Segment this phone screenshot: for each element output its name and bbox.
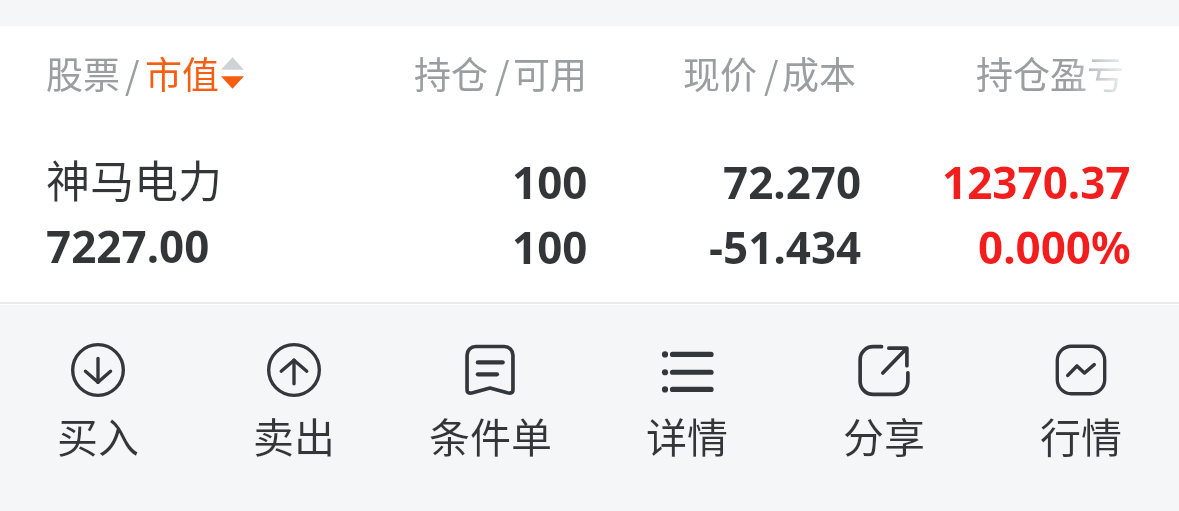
staticText: 100	[512, 217, 588, 277]
staticText: 持仓盈亏	[976, 46, 1124, 100]
button[interactable]: 持仓	[414, 46, 587, 100]
staticText: 0.000%	[978, 217, 1131, 277]
staticText: 成本	[782, 46, 856, 100]
button[interactable]: 买入	[0, 305, 196, 511]
staticText: 股票	[46, 46, 120, 100]
staticText: 现价	[683, 46, 757, 100]
staticText: /	[125, 46, 140, 100]
staticText: 卖出	[253, 405, 335, 464]
button[interactable]: 神马电力	[0, 121, 1179, 302]
staticText: 分享	[843, 405, 925, 464]
button[interactable]: 行情	[982, 305, 1179, 511]
staticText: 72.270	[723, 152, 862, 212]
button[interactable]: 卖出	[196, 305, 392, 511]
button[interactable]: 分享	[785, 305, 982, 511]
staticText: 12370.37	[942, 152, 1131, 212]
staticText: 条件单	[429, 405, 552, 464]
button[interactable]: 现价	[683, 46, 856, 100]
button[interactable]: 详情	[588, 305, 785, 511]
staticText: /	[764, 46, 779, 100]
staticText: 行情	[1040, 405, 1122, 464]
staticText: 详情	[646, 405, 728, 464]
staticText: 持仓	[414, 46, 488, 100]
staticText: /	[495, 46, 510, 100]
staticText: 市值	[145, 46, 219, 100]
staticText: 7227.00	[46, 216, 210, 276]
button[interactable]: 按市值排序	[46, 46, 246, 100]
staticText: 可用	[513, 46, 587, 100]
button[interactable]: 条件单	[392, 305, 588, 511]
staticText: 买入	[57, 405, 139, 464]
staticText: -51.434	[709, 217, 862, 277]
staticText: 100	[512, 152, 588, 212]
staticText: 神马电力	[46, 147, 222, 211]
